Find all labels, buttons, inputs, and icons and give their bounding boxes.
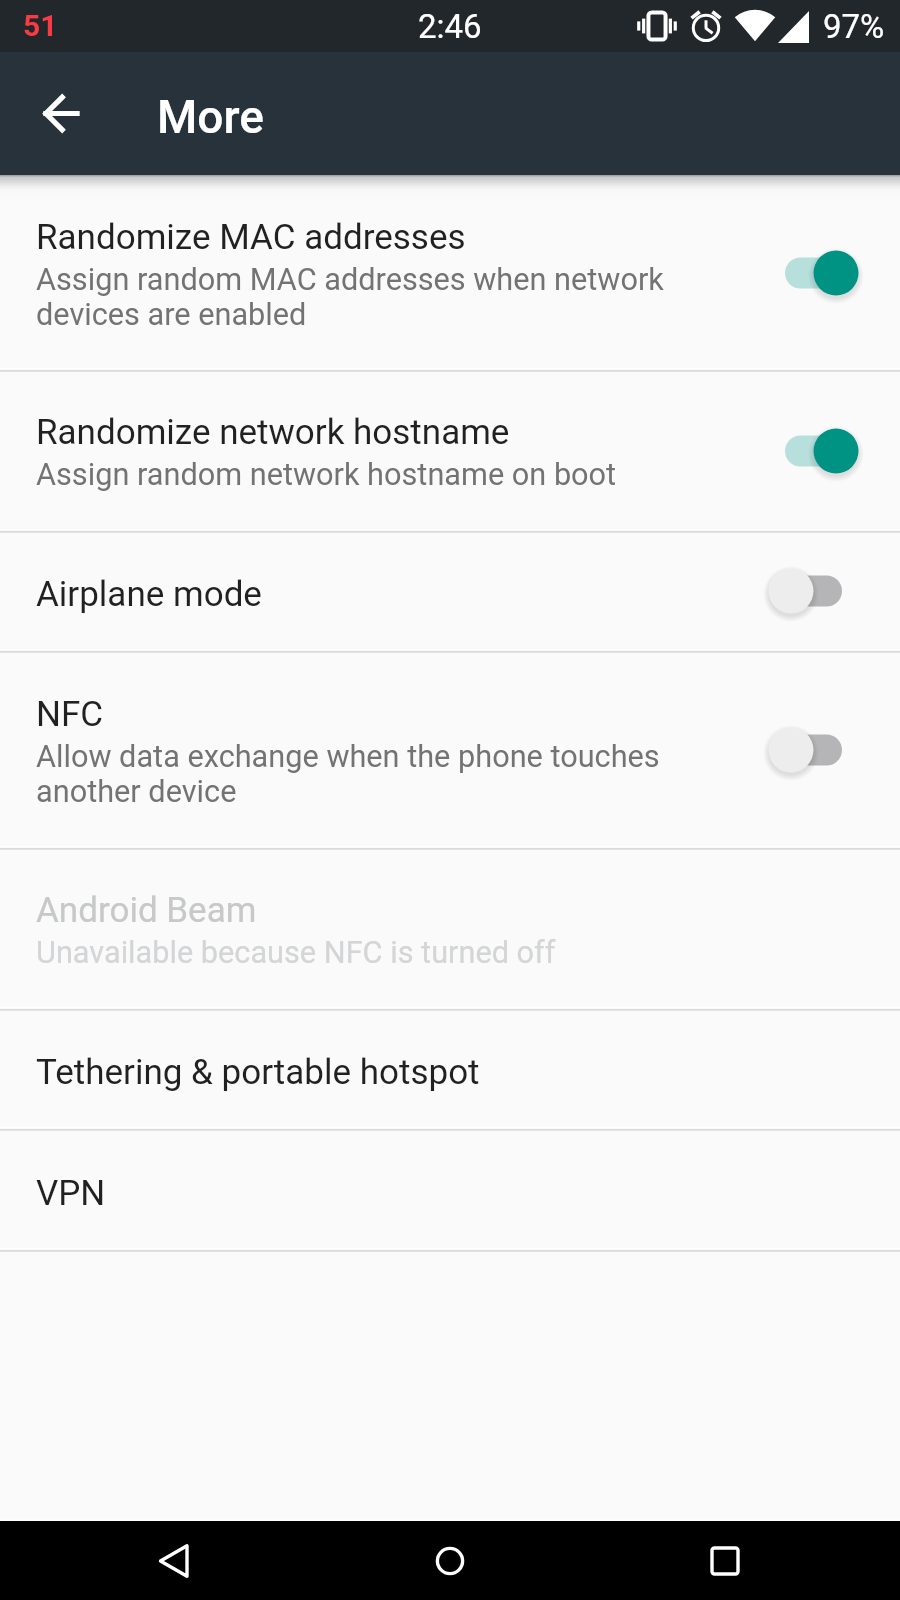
button[interactable]: Navigate up — [11, 81, 76, 146]
staticText: Allow data exchange when the phone touch… — [36, 739, 660, 809]
button[interactable]: Tethering & portable hotspot — [0, 1009, 900, 1129]
button[interactable]: Home — [390, 1521, 510, 1600]
staticText: 2:46 — [418, 7, 482, 46]
staticText: More — [157, 90, 264, 144]
staticText: 97% — [823, 7, 885, 46]
button[interactable]: Back — [115, 1521, 235, 1600]
button[interactable]: Randomize network hostname — [0, 370, 900, 531]
staticText: NFC — [36, 691, 104, 735]
button[interactable]: Airplane mode — [0, 531, 900, 651]
button[interactable]: Randomize MAC addresses — [0, 175, 900, 370]
staticText: Tethering & portable hotspot — [36, 1049, 480, 1093]
button[interactable]: VPN — [0, 1129, 900, 1250]
button[interactable]: Switch off — [752, 561, 842, 621]
staticText: Assign random MAC addresses when network… — [36, 262, 664, 332]
staticText: Randomize network hostname — [36, 409, 510, 453]
staticText: Randomize MAC addresses — [36, 214, 466, 258]
button[interactable]: Switch on — [752, 421, 842, 481]
button[interactable]: Recent apps — [665, 1521, 785, 1600]
button[interactable]: Switch on — [752, 243, 842, 303]
staticText: Assign random network hostname on boot — [36, 457, 617, 492]
staticText: Android Beam — [36, 887, 257, 931]
button[interactable]: Switch off — [752, 720, 842, 780]
staticText: VPN — [36, 1170, 106, 1214]
button[interactable]: NFC — [0, 651, 900, 848]
staticText: Airplane mode — [36, 571, 262, 615]
staticText: Unavailable because NFC is turned off — [36, 935, 556, 970]
button[interactable]: Android Beam — [0, 848, 900, 1009]
staticText: 51 — [23, 8, 58, 43]
